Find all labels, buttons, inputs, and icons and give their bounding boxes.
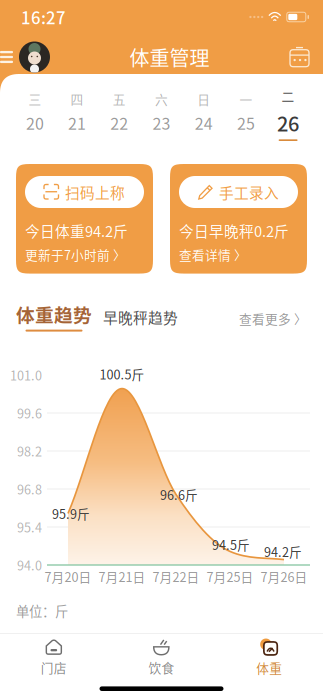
button[interactable]: Profile bbox=[19, 41, 50, 72]
staticText: 三 bbox=[28, 90, 41, 108]
button[interactable]: 体重 bbox=[215, 640, 323, 676]
staticText: 101.0 bbox=[10, 366, 42, 384]
staticText: 94.0 bbox=[17, 556, 42, 574]
staticText: 96.6斤 bbox=[160, 485, 198, 504]
button[interactable]: 日 bbox=[183, 90, 225, 138]
staticText: 饮食 bbox=[148, 658, 174, 676]
staticText: 早晚秤趋势 bbox=[103, 306, 178, 328]
button[interactable]: 体重趋势 bbox=[16, 301, 92, 332]
staticText: 99.6 bbox=[17, 404, 42, 422]
staticText: 五 bbox=[113, 90, 126, 108]
staticText: 查看更多 〉 bbox=[239, 309, 307, 328]
button[interactable]: 三 bbox=[14, 90, 56, 138]
staticText: 更新于7小时前 〉 bbox=[25, 245, 126, 263]
staticText: 今日体重94.2斤 bbox=[25, 220, 128, 241]
staticText: 21 bbox=[68, 111, 86, 134]
staticText: 7月21日 bbox=[98, 567, 145, 586]
button[interactable]: 五 bbox=[98, 90, 140, 138]
staticText: 体重 bbox=[256, 658, 282, 677]
button[interactable]: 查看更多 〉 bbox=[239, 309, 307, 332]
staticText: 单位：斤 bbox=[16, 601, 68, 620]
staticText: 门店 bbox=[41, 658, 67, 676]
staticText: 四 bbox=[71, 90, 84, 108]
staticText: 95.4 bbox=[17, 518, 42, 536]
staticText: 手工录入 bbox=[219, 181, 279, 203]
staticText: 95.9斤 bbox=[52, 504, 90, 523]
staticText: 23 bbox=[152, 111, 170, 134]
button[interactable]: 扫码上称 bbox=[25, 176, 144, 208]
staticText: 24 bbox=[195, 111, 213, 134]
button[interactable]: Menu bbox=[0, 41, 19, 73]
button[interactable]: 门店 bbox=[0, 640, 108, 676]
staticText: 7月25日 bbox=[206, 567, 253, 586]
staticText: 94.5斤 bbox=[212, 535, 250, 554]
staticText: 今日早晚秤0.2斤 bbox=[179, 220, 289, 241]
button[interactable]: 早晚秤趋势 bbox=[92, 306, 178, 332]
staticText: 22 bbox=[110, 111, 128, 134]
staticText: 查看详情 〉 bbox=[179, 245, 247, 263]
button[interactable]: 六 bbox=[140, 90, 183, 138]
staticText: 20 bbox=[26, 111, 44, 134]
staticText: 7月20日 bbox=[44, 567, 91, 586]
button[interactable]: 饮食 bbox=[108, 640, 215, 676]
staticText: 26 bbox=[277, 108, 299, 137]
staticText: 扫码上称 bbox=[65, 181, 125, 203]
staticText: 一 bbox=[239, 90, 252, 108]
button[interactable]: 一 bbox=[225, 90, 267, 138]
button[interactable]: 更新于7小时前 〉 bbox=[25, 241, 126, 263]
staticText: 六 bbox=[155, 90, 168, 108]
staticText: 98.2 bbox=[17, 442, 42, 460]
button[interactable]: 手工录入 bbox=[179, 176, 298, 208]
staticText: 25 bbox=[237, 111, 255, 134]
staticText: 体重趋势 bbox=[16, 301, 92, 328]
staticText: 16:27 bbox=[21, 5, 66, 29]
button[interactable]: 查看详情 〉 bbox=[179, 241, 247, 263]
button[interactable]: 四 bbox=[56, 90, 98, 138]
staticText: 100.5斤 bbox=[99, 365, 144, 383]
staticText: 96.8 bbox=[17, 480, 42, 498]
staticText: 94.2斤 bbox=[264, 542, 302, 561]
staticText: 体重管理 bbox=[129, 42, 209, 71]
button[interactable]: 二 bbox=[267, 87, 309, 141]
button[interactable]: Calendar bbox=[289, 46, 310, 67]
staticText: 7月22日 bbox=[152, 567, 199, 586]
staticText: 7月26日 bbox=[260, 567, 307, 586]
staticText: 二 bbox=[282, 87, 295, 105]
staticText: 日 bbox=[197, 90, 210, 108]
